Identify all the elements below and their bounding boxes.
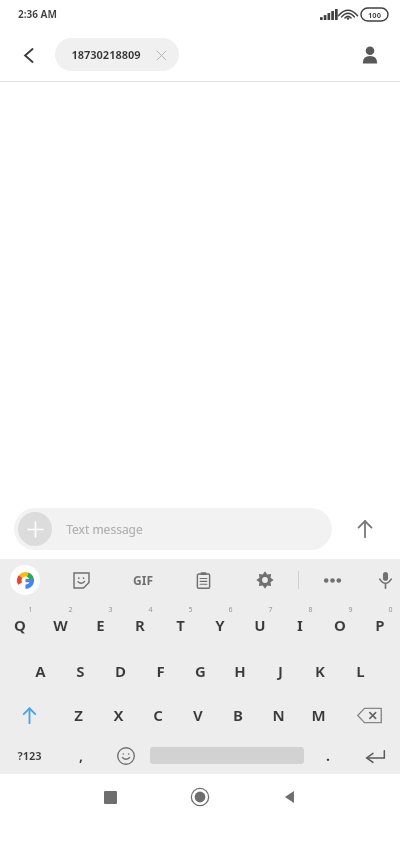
button[interactable]: Home	[172, 774, 228, 820]
staticText: 1	[28, 605, 33, 615]
staticText: 6	[228, 605, 233, 615]
staticText: C	[153, 705, 163, 725]
button[interactable]: Send	[344, 508, 386, 550]
button[interactable]: Q	[0, 601, 40, 649]
staticText: Q	[14, 615, 26, 635]
button[interactable]: Z	[58, 693, 98, 737]
staticText: 3	[108, 605, 113, 615]
button[interactable]: Add attachment	[18, 512, 52, 546]
button[interactable]: F	[140, 649, 180, 693]
button[interactable]: Backspace	[338, 693, 400, 737]
button[interactable]: U	[240, 601, 280, 649]
staticText: H	[234, 661, 246, 681]
button[interactable]: Back	[262, 774, 318, 820]
staticText: K	[315, 661, 325, 681]
button[interactable]: Emoji	[104, 737, 148, 774]
staticText: T	[176, 615, 185, 635]
button[interactable]: Enter	[350, 737, 400, 774]
button[interactable]: Voice input	[371, 563, 400, 597]
staticText: P	[375, 615, 385, 635]
staticText: G	[195, 661, 206, 681]
button[interactable]: Recent apps	[82, 774, 138, 820]
button[interactable]: J	[260, 649, 300, 693]
button[interactable]: Space	[148, 737, 306, 774]
button[interactable]: K	[300, 649, 340, 693]
staticText: ?123	[17, 748, 42, 763]
staticText: 7	[268, 605, 273, 615]
button[interactable]: Period	[306, 737, 350, 774]
staticText: 100	[368, 10, 381, 20]
staticText: O	[334, 615, 346, 635]
staticText: X	[113, 705, 124, 725]
staticText: 9	[348, 605, 353, 615]
button[interactable]: T	[160, 601, 200, 649]
button[interactable]: C	[138, 693, 178, 737]
staticText: V	[193, 705, 203, 725]
button[interactable]: P	[360, 601, 400, 649]
staticText: J	[278, 661, 283, 681]
staticText: A	[35, 661, 46, 681]
staticText: W	[53, 615, 68, 635]
staticText: S	[76, 661, 85, 681]
staticText: R	[135, 615, 145, 635]
button[interactable]: Contacts	[350, 35, 390, 75]
button[interactable]: I	[280, 601, 320, 649]
button[interactable]: Back	[10, 36, 48, 74]
button[interactable]: R	[120, 601, 160, 649]
button[interactable]: Stickers	[64, 563, 98, 597]
button[interactable]: Add attachment	[14, 508, 332, 550]
staticText: B	[233, 705, 243, 725]
button[interactable]: More options	[315, 563, 349, 597]
staticText: 2:36 AM	[18, 7, 57, 21]
button[interactable]: Settings	[248, 563, 282, 597]
button[interactable]: B	[218, 693, 258, 737]
staticText: 0	[388, 605, 393, 615]
button[interactable]: V	[178, 693, 218, 737]
staticText: 5	[188, 605, 193, 615]
staticText: GIF	[133, 572, 153, 588]
button[interactable]: X	[98, 693, 138, 737]
staticText: N	[272, 705, 285, 725]
button[interactable]: O	[320, 601, 360, 649]
button[interactable]: Google search	[10, 565, 40, 595]
button[interactable]: G	[180, 649, 220, 693]
staticText: 4	[148, 605, 153, 615]
button[interactable]: S	[60, 649, 100, 693]
button[interactable]: M	[298, 693, 338, 737]
button[interactable]: Shift	[0, 693, 58, 737]
button[interactable]: 18730218809	[55, 38, 179, 71]
staticText: ,	[79, 746, 83, 765]
button[interactable]: Remove recipient	[151, 45, 171, 65]
button[interactable]: Clipboard	[186, 563, 220, 597]
staticText: D	[115, 661, 126, 681]
staticText: M	[311, 705, 326, 725]
staticText: Text message	[66, 521, 143, 537]
staticText: F	[156, 661, 165, 681]
button[interactable]: A	[20, 649, 60, 693]
button[interactable]: Comma	[58, 737, 104, 774]
staticText: 8	[308, 605, 313, 615]
button[interactable]: W	[40, 601, 80, 649]
button[interactable]: Y	[200, 601, 240, 649]
staticText: I	[297, 615, 303, 635]
staticText: 18730218809	[71, 47, 141, 62]
staticText: 2	[68, 605, 73, 615]
staticText: .	[326, 746, 330, 765]
staticText: L	[356, 661, 365, 681]
button[interactable]: E	[80, 601, 120, 649]
button[interactable]: H	[220, 649, 260, 693]
button[interactable]: ?123	[0, 737, 58, 774]
button[interactable]: N	[258, 693, 298, 737]
staticText: U	[254, 615, 266, 635]
staticText: E	[96, 615, 105, 635]
staticText: Z	[74, 705, 83, 725]
staticText: Y	[215, 615, 225, 635]
button[interactable]: L	[340, 649, 380, 693]
button[interactable]: D	[100, 649, 140, 693]
button[interactable]: GIF	[126, 563, 160, 597]
